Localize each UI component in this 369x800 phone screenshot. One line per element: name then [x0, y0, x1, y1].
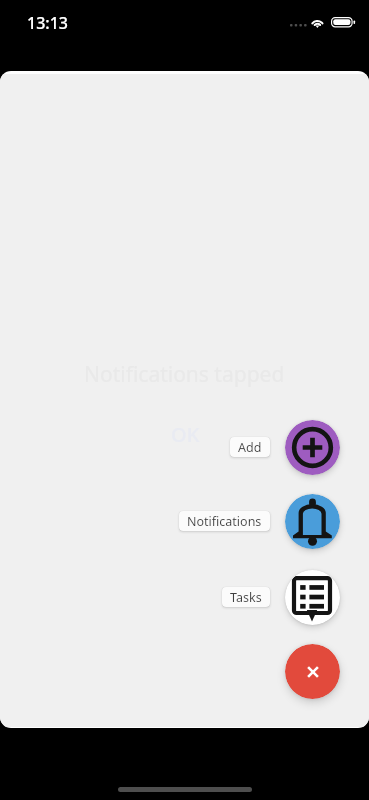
- staticText: Tasks: [230, 589, 262, 606]
- button[interactable]: Tasks: [285, 570, 340, 625]
- button[interactable]: Notifications: [285, 494, 340, 549]
- button[interactable]: Add: [230, 437, 270, 457]
- button[interactable]: Add: [285, 420, 340, 475]
- staticText: Notifications: [187, 513, 262, 530]
- button[interactable]: Close menu: [285, 644, 340, 699]
- staticText: Add: [238, 439, 262, 456]
- button[interactable]: Tasks: [222, 587, 270, 607]
- button[interactable]: Notifications: [179, 511, 270, 531]
- staticText: 13:13: [27, 12, 68, 34]
